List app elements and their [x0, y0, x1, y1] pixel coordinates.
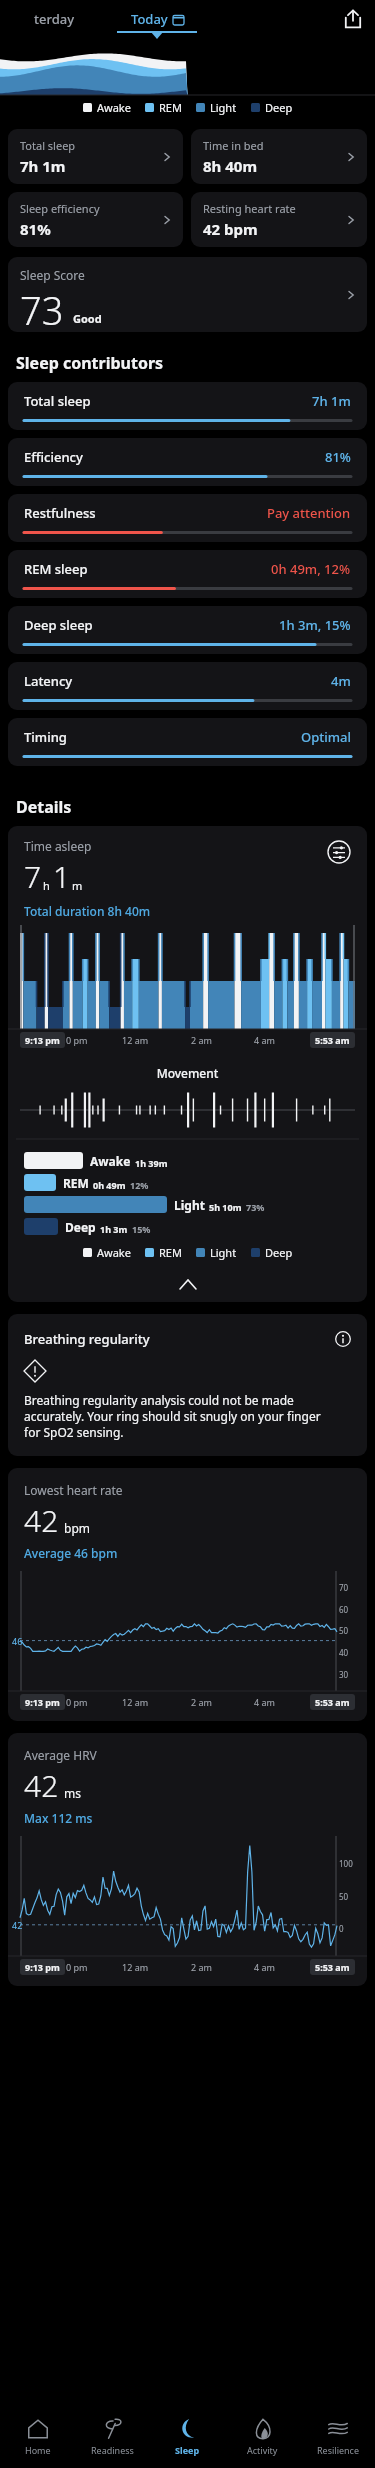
staticText: 1 [53, 856, 71, 897]
button[interactable]: Lowest heart rate [8, 1468, 367, 1721]
staticText: 42 [12, 1919, 23, 1931]
button[interactable]: Share [331, 0, 375, 38]
staticText: Efficiency [24, 448, 83, 466]
staticText: Average 46 bpm [24, 1545, 118, 1561]
staticText: 0 [339, 1923, 344, 1934]
button[interactable]: Activity [225, 2406, 300, 2468]
staticText: Total duration 8h 40m [24, 903, 151, 919]
staticText: h [43, 878, 50, 893]
staticText: 2 am [191, 1034, 212, 1046]
staticText: Latency [24, 672, 73, 690]
staticText: 4 am [254, 1961, 275, 1973]
staticText: 7h 1m [312, 392, 351, 410]
staticText: Home [25, 2444, 51, 2456]
staticText: Sleep efficiency [20, 201, 100, 216]
staticText: 15% [132, 1223, 151, 1235]
staticText: Restfulness [24, 504, 96, 522]
staticText: 50 [339, 1625, 349, 1636]
staticText: 0h 49m, 12% [271, 560, 351, 578]
staticText: 5:53 am [315, 1696, 350, 1708]
button[interactable]: Adjust [327, 840, 351, 864]
staticText: Average HRV [24, 1747, 97, 1763]
staticText: 9:13 pm [25, 1696, 60, 1708]
staticText: bpm [64, 1520, 90, 1536]
staticText: Good [73, 311, 102, 326]
staticText: 46 [12, 1635, 23, 1647]
staticText: REM sleep [24, 560, 88, 578]
staticText: 2 am [191, 1696, 212, 1708]
button[interactable]: terday [6, 0, 102, 38]
staticText: 4 am [254, 1034, 275, 1046]
button[interactable]: Resilience [300, 2406, 375, 2468]
staticText: Activity [247, 2444, 278, 2456]
staticText: Awake [97, 1245, 131, 1260]
staticText: Deep [65, 1219, 96, 1235]
staticText: 8h 40m [203, 156, 258, 176]
staticText: Resting heart rate [203, 201, 296, 216]
button[interactable]: Breathing regularity [8, 1314, 367, 1456]
staticText: 0 pm [66, 1961, 88, 1973]
staticText: Time asleep [24, 838, 92, 854]
button[interactable]: Sleep efficiency [8, 192, 183, 247]
staticText: 2 am [191, 1961, 212, 1973]
staticText: Readiness [91, 2444, 134, 2456]
staticText: Timing [24, 728, 67, 746]
staticText: Awake [90, 1153, 131, 1169]
staticText: Deep sleep [24, 616, 93, 634]
button[interactable]: Deep sleep [8, 606, 367, 654]
staticText: 0h 49m [93, 1179, 126, 1191]
button[interactable]: Average HRV [8, 1733, 367, 1986]
staticText: Pay attention [267, 504, 351, 522]
button[interactable]: Readiness [75, 2406, 150, 2468]
button[interactable]: Total sleep [8, 129, 183, 184]
staticText: Deep [265, 100, 293, 115]
staticText: 1h 39m [135, 1157, 168, 1169]
button[interactable]: Timing [8, 718, 367, 766]
staticText: ms [64, 1785, 81, 1801]
staticText: 42 bpm [203, 219, 258, 239]
staticText: Movement [8, 1065, 367, 1081]
staticText: 81% [20, 219, 51, 239]
staticText: Sleep contributors [16, 352, 164, 374]
button[interactable]: Info [335, 1331, 351, 1347]
staticText: Resilience [317, 2444, 359, 2456]
staticText: Total sleep [24, 392, 91, 410]
staticText: Light [174, 1197, 205, 1213]
staticText: accurately. Your ring should sit snugly … [24, 1408, 321, 1424]
button[interactable]: Total sleep [8, 382, 367, 430]
button[interactable]: Sleep Score [8, 257, 367, 332]
button[interactable]: Efficiency [8, 438, 367, 486]
staticText: Details [16, 796, 72, 818]
staticText: 4m [331, 672, 351, 690]
staticText: REM [159, 100, 182, 115]
staticText: 30 [339, 1669, 349, 1680]
staticText: Optimal [301, 728, 351, 746]
button[interactable]: Sleep [150, 2406, 225, 2468]
staticText: 50 [339, 1891, 349, 1902]
staticText: Sleep Score [20, 267, 85, 283]
staticText: 9:13 pm [25, 1961, 60, 1973]
staticText: 7h 1m [20, 156, 66, 176]
staticText: 81% [325, 448, 351, 466]
staticText: 12 am [122, 1696, 149, 1708]
staticText: Deep [265, 1245, 293, 1260]
staticText: Light [210, 100, 237, 115]
button[interactable]: Resting heart rate [191, 192, 367, 247]
staticText: 5h 10m [209, 1201, 242, 1213]
staticText: Total sleep [20, 138, 76, 153]
button[interactable]: Latency [8, 662, 367, 710]
staticText: 1h 3m [100, 1223, 128, 1235]
staticText: Sleep [175, 2444, 200, 2456]
button[interactable]: Collapse [8, 1272, 367, 1296]
button[interactable]: REM sleep [8, 550, 367, 598]
staticText: 5:53 am [315, 1034, 350, 1046]
staticText: 73 [20, 284, 64, 332]
button[interactable]: Restfulness [8, 494, 367, 542]
staticText: Today [131, 10, 168, 28]
button[interactable]: Home [0, 2406, 75, 2468]
staticText: for SpO2 sensing. [24, 1424, 124, 1440]
button[interactable]: Today [102, 0, 212, 38]
button[interactable]: Time in bed [191, 129, 367, 184]
staticText: Breathing regularity analysis could not … [24, 1392, 294, 1408]
staticText: 0 pm [66, 1034, 88, 1046]
